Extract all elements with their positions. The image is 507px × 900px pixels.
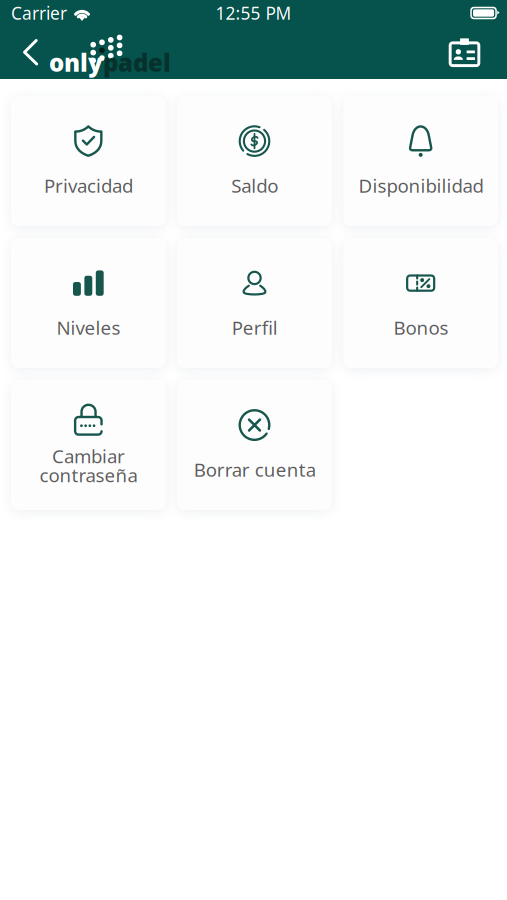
button[interactable]: Borrar cuenta	[177, 380, 332, 510]
staticText: 12:55 PM	[215, 1, 291, 24]
staticText: Saldo	[231, 173, 278, 198]
button[interactable]: Bonos	[343, 238, 498, 368]
button[interactable]: Perfil	[177, 238, 332, 368]
button[interactable]: Niveles	[11, 238, 166, 368]
staticText: Cambiar contraseña	[39, 444, 137, 487]
staticText: Privacidad	[44, 173, 133, 198]
button[interactable]: Carnet	[431, 27, 507, 78]
button[interactable]: Back	[0, 29, 47, 76]
staticText: Borrar cuenta	[193, 457, 315, 482]
staticText: padel	[103, 46, 171, 78]
staticText: only	[49, 46, 103, 78]
staticText: Perfil	[231, 315, 277, 340]
button[interactable]: Cambiar contraseña	[11, 380, 166, 510]
staticText: Niveles	[56, 315, 120, 340]
button[interactable]: Disponibilidad	[343, 96, 498, 226]
button[interactable]: Privacidad	[11, 96, 166, 226]
staticText: Bonos	[393, 315, 448, 340]
button[interactable]: Saldo	[177, 96, 332, 226]
staticText: Disponibilidad	[358, 173, 483, 198]
staticText: Carrier	[11, 1, 67, 24]
